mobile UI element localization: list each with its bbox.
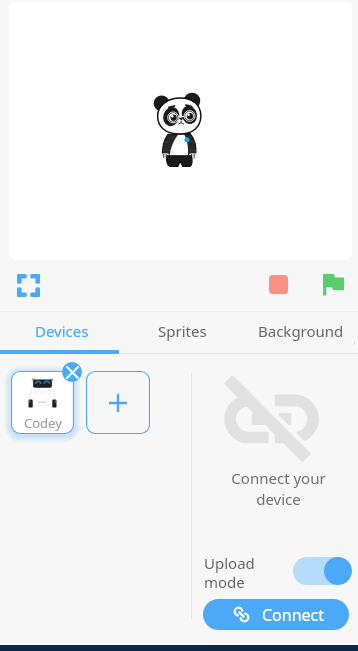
button[interactable]: Devices bbox=[1, 312, 122, 350]
button[interactable]: Codey bbox=[11, 371, 74, 434]
button[interactable]: Sprites bbox=[122, 312, 243, 350]
staticText: Connect bbox=[262, 604, 325, 626]
button[interactable]: Stop bbox=[262, 268, 294, 300]
staticText: Codey bbox=[24, 414, 62, 432]
staticText: Upload mode bbox=[204, 553, 255, 592]
staticText: Connect your device bbox=[213, 468, 344, 510]
button[interactable]: Remove device bbox=[62, 362, 82, 382]
button[interactable]: Start bbox=[317, 268, 349, 300]
staticText: Sprites bbox=[158, 321, 207, 341]
button[interactable]: Add device bbox=[86, 371, 150, 434]
staticText: Background bbox=[258, 321, 344, 341]
button[interactable]: Connect bbox=[203, 599, 349, 630]
button[interactable]: Upload mode toggle bbox=[293, 557, 352, 585]
button[interactable]: Full screen bbox=[11, 268, 45, 302]
staticText: Devices bbox=[35, 321, 89, 341]
button[interactable]: Background bbox=[243, 312, 358, 350]
